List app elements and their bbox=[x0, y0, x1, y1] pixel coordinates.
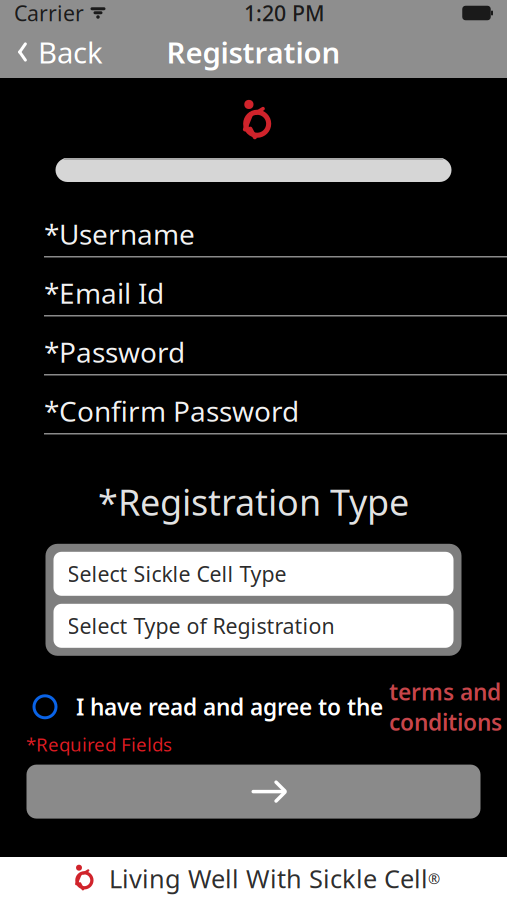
button[interactable]: Back bbox=[0, 26, 119, 78]
staticText: terms and conditions bbox=[389, 677, 502, 737]
button[interactable]: I have read and agree to the bbox=[0, 686, 507, 728]
staticText: *Confirm Password bbox=[44, 392, 299, 430]
staticText: *Username bbox=[44, 215, 195, 253]
staticText: I have read and agree to the bbox=[76, 692, 389, 722]
staticText: Back bbox=[38, 32, 103, 71]
staticText: Select Type of Registration bbox=[67, 612, 334, 640]
staticText: *Password bbox=[44, 333, 185, 371]
button[interactable]: Select Type of Registration bbox=[53, 604, 453, 648]
staticText: Carrier bbox=[14, 0, 84, 27]
staticText: Registration bbox=[166, 32, 340, 71]
staticText: Living Well With Sickle Cell bbox=[109, 862, 428, 895]
staticText: ® bbox=[428, 869, 440, 888]
button[interactable]: Select Sickle Cell Type bbox=[53, 552, 453, 596]
staticText: *Required Fields bbox=[26, 732, 172, 757]
staticText: 1:20 PM bbox=[244, 0, 325, 27]
staticText: *Registration Type bbox=[98, 478, 409, 526]
staticText: Select Sickle Cell Type bbox=[67, 560, 286, 588]
button[interactable]: Continue bbox=[26, 765, 480, 819]
staticText: *Email Id bbox=[44, 274, 164, 312]
